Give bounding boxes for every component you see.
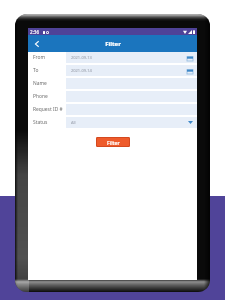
staticText: All [71, 120, 76, 125]
staticText: 2021-09-14 [71, 68, 92, 73]
staticText: Filter [105, 40, 121, 48]
button[interactable]: Request ID # [28, 104, 197, 115]
staticText: Status [33, 119, 48, 126]
staticText: Phone [33, 93, 48, 100]
button[interactable]: From [28, 52, 197, 63]
button[interactable]: Filter [97, 138, 129, 146]
staticText: Name [33, 80, 47, 87]
staticText: Filter [107, 139, 120, 146]
staticText: 2021-09-13 [71, 55, 92, 60]
staticText: From [33, 54, 45, 61]
button[interactable]: To [28, 65, 197, 76]
button[interactable]: Name [28, 78, 197, 89]
button[interactable]: Phone [28, 91, 197, 102]
staticText: Request ID # [33, 106, 63, 113]
staticText: 2:36 [30, 29, 40, 35]
button[interactable]: Back [28, 36, 44, 52]
staticText: To [33, 67, 39, 74]
button[interactable]: Status [28, 117, 197, 128]
